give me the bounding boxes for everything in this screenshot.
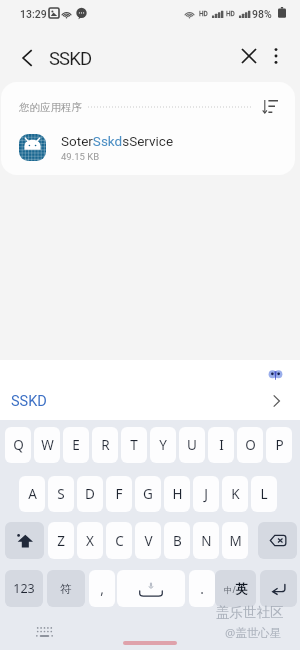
button[interactable]: 中/英: [215, 570, 256, 607]
staticText: V: [144, 532, 153, 550]
staticText: 49.15 KB: [61, 151, 100, 162]
button[interactable]: E: [63, 427, 89, 463]
button[interactable]: C: [106, 522, 132, 559]
button[interactable]: F: [106, 476, 132, 512]
button[interactable]: Backspace: [258, 522, 297, 559]
button[interactable]: .: [189, 570, 215, 607]
staticText: F: [115, 485, 123, 503]
staticText: D: [85, 485, 95, 503]
staticText: 13:29: [20, 8, 47, 20]
staticText: @盖世心星: [225, 625, 282, 641]
button[interactable]: K: [222, 476, 248, 512]
button[interactable]: H: [164, 476, 190, 512]
button[interactable]: N: [193, 522, 219, 559]
staticText: O: [245, 436, 256, 454]
staticText: T: [130, 436, 138, 454]
button[interactable]: J: [193, 476, 219, 512]
staticText: J: [204, 485, 208, 503]
button[interactable]: M: [222, 522, 248, 559]
staticText: 123: [13, 580, 35, 597]
staticText: U: [187, 436, 197, 454]
button[interactable]: 符: [47, 570, 85, 607]
button[interactable]: Space: [117, 570, 185, 607]
button[interactable]: More options: [260, 40, 292, 72]
button[interactable]: L: [251, 476, 277, 512]
button[interactable]: SoterSskdsService: [1, 124, 295, 170]
button[interactable]: Y: [150, 427, 176, 463]
button[interactable]: Shift: [5, 522, 44, 559]
staticText: A: [28, 485, 37, 503]
button[interactable]: D: [77, 476, 103, 512]
button[interactable]: ,: [89, 570, 115, 607]
button[interactable]: R: [92, 427, 118, 463]
staticText: C: [115, 532, 124, 550]
button[interactable]: Hide keyboard: [32, 620, 56, 644]
button[interactable]: W: [34, 427, 60, 463]
staticText: 98%: [252, 8, 272, 20]
staticText: H: [172, 485, 183, 503]
staticText: 盖乐世社区: [216, 604, 284, 621]
button[interactable]: P: [266, 427, 292, 463]
staticText: HD: [226, 10, 235, 18]
button[interactable]: Navigate up: [9, 40, 45, 76]
staticText: Q: [13, 436, 24, 454]
button[interactable]: V: [135, 522, 161, 559]
staticText: E: [72, 436, 80, 454]
staticText: HD: [199, 10, 208, 18]
button[interactable]: B: [164, 522, 190, 559]
staticText: 中/英: [224, 581, 248, 596]
staticText: S: [57, 485, 65, 503]
staticText: M: [229, 532, 242, 550]
button[interactable]: Sort order: [257, 93, 283, 119]
staticText: SoterSskdsService: [61, 133, 174, 149]
staticText: SSKD: [11, 393, 47, 410]
button[interactable]: Q: [5, 427, 31, 463]
staticText: P: [275, 436, 284, 454]
staticText: Y: [159, 436, 167, 454]
button[interactable]: O: [237, 427, 263, 463]
staticText: R: [101, 436, 110, 454]
staticText: X: [86, 532, 94, 550]
button[interactable]: G: [135, 476, 161, 512]
button[interactable]: Enter: [260, 570, 297, 607]
staticText: Z: [57, 532, 65, 550]
button[interactable]: X: [77, 522, 103, 559]
staticText: B: [173, 532, 182, 550]
button[interactable]: U: [179, 427, 205, 463]
staticText: L: [260, 485, 268, 503]
button[interactable]: S: [48, 476, 74, 512]
staticText: K: [231, 485, 240, 503]
staticText: N: [201, 532, 212, 550]
button[interactable]: A: [19, 476, 45, 512]
button[interactable]: T: [121, 427, 147, 463]
button[interactable]: Expand suggestions: [261, 386, 291, 416]
staticText: G: [143, 485, 153, 503]
staticText: I: [219, 436, 224, 454]
staticText: W: [41, 436, 54, 454]
button[interactable]: Z: [48, 522, 74, 559]
staticText: SSKD: [49, 48, 92, 70]
button[interactable]: Clear text: [233, 40, 265, 72]
staticText: ,: [100, 580, 104, 598]
staticText: 符: [60, 582, 72, 596]
button[interactable]: SSKD: [3, 386, 61, 416]
staticText: 您的应用程序: [19, 101, 82, 114]
button[interactable]: 123: [5, 570, 43, 607]
staticText: .: [200, 580, 204, 598]
button[interactable]: I: [208, 427, 234, 463]
